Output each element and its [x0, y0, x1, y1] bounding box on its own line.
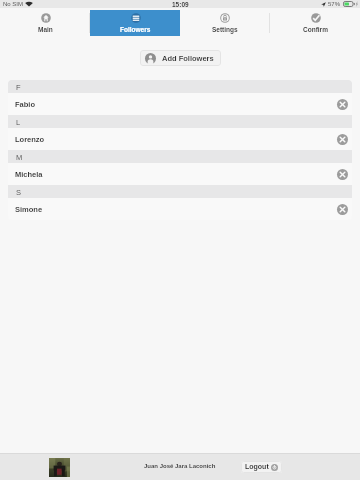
staticText: Juan José Jara Laconich [144, 463, 216, 470]
button[interactable]: Settings [180, 10, 270, 36]
staticText: Lorenzo [15, 135, 45, 143]
staticText: 57% [328, 1, 341, 8]
button[interactable]: Logout [241, 461, 282, 473]
button[interactable]: Lorenzo [8, 128, 352, 150]
button[interactable]: Simone [8, 198, 352, 220]
staticText: Fabio [15, 100, 35, 108]
button[interactable]: Remove Lorenzo [335, 132, 349, 146]
staticText: Followers [120, 26, 151, 33]
button[interactable]: Main [0, 10, 90, 36]
button[interactable]: Remove Michela [335, 167, 349, 181]
staticText: No SIM [3, 1, 24, 8]
button[interactable]: Remove Simone [335, 202, 349, 216]
staticText: Simone [15, 205, 43, 213]
staticText: 15:09 [172, 1, 189, 8]
staticText: F [16, 83, 21, 91]
staticText: Main [38, 26, 53, 33]
staticText: Settings [212, 26, 238, 33]
staticText: S [16, 188, 22, 196]
staticText: Confirm [303, 26, 328, 33]
button[interactable]: Michela [8, 163, 352, 185]
button[interactable]: Confirm [270, 10, 360, 36]
button[interactable]: Profile photo [49, 458, 70, 477]
staticText: M [16, 153, 23, 161]
staticText: Michela [15, 170, 43, 178]
staticText: Logout [245, 463, 269, 471]
staticText: L [16, 118, 21, 126]
button[interactable]: Add Followers [140, 50, 221, 66]
button[interactable]: Remove Fabio [335, 97, 349, 111]
button[interactable]: Fabio [8, 93, 352, 115]
button[interactable]: Followers [90, 10, 180, 36]
staticText: Add Followers [162, 54, 214, 62]
